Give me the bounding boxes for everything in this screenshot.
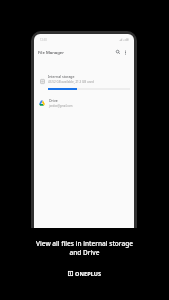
staticText: View all files in internal storage and D… — [36, 239, 133, 257]
staticText: 43.52 GB available, 21.3 GB used — [48, 80, 94, 84]
button[interactable]: Internal storage — [34, 74, 134, 90]
button[interactable]: Search — [112, 46, 124, 58]
staticText: Internal storage — [48, 74, 75, 79]
staticText: File Manager — [38, 50, 64, 56]
staticText: ONEPLUS — [75, 270, 102, 277]
staticText: Drive — [49, 98, 58, 103]
staticText: jondoe@gmail.com — [49, 104, 73, 108]
staticText: 12:30 — [40, 38, 47, 42]
button[interactable]: Drive — [34, 98, 134, 108]
button[interactable]: More options — [119, 46, 131, 58]
